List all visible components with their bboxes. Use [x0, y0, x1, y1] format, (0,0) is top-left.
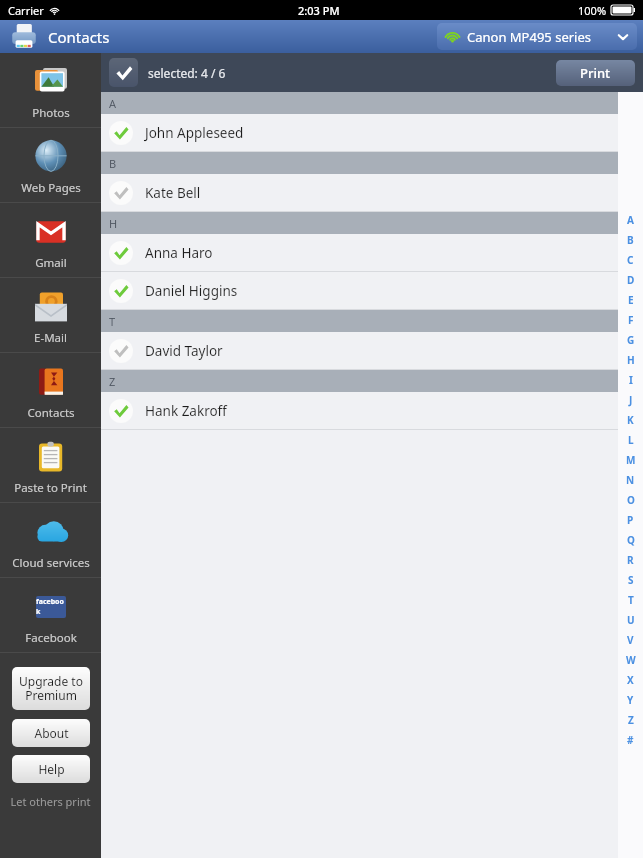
staticText: Facebook — [25, 630, 77, 646]
button[interactable]: Contacts — [0, 353, 101, 428]
staticText: Print — [580, 64, 611, 82]
button[interactable]: Web Pages — [0, 128, 101, 203]
staticText: Carrier — [8, 3, 44, 18]
staticText: E — [628, 293, 634, 307]
staticText: K — [627, 413, 634, 427]
staticText: Hank Zakroff — [145, 402, 227, 420]
staticText: Cloud services — [12, 555, 90, 571]
staticText: John Appleseed — [145, 124, 244, 142]
staticText: Photos — [32, 105, 70, 121]
staticText: Let others print — [10, 794, 91, 809]
staticText: Q — [627, 533, 635, 547]
staticText: Paste to Print — [14, 480, 87, 496]
staticText: G — [627, 333, 635, 347]
staticText: T — [628, 593, 634, 607]
staticText: C — [627, 253, 634, 267]
staticText: Gmail — [35, 255, 67, 271]
button[interactable]: facebook — [0, 578, 101, 653]
staticText: A — [627, 213, 634, 227]
staticText: U — [627, 613, 635, 627]
button[interactable]: Photos — [0, 53, 101, 128]
staticText: David Taylor — [145, 342, 223, 360]
button[interactable]: Gmail — [0, 203, 101, 278]
staticText: B — [627, 233, 634, 247]
button[interactable]: John Appleseed — [101, 114, 643, 152]
staticText: H — [109, 216, 118, 231]
staticText: F — [628, 313, 634, 327]
staticText: Contacts — [48, 27, 110, 47]
staticText: W — [626, 653, 636, 667]
button[interactable]: Cloud services — [0, 503, 101, 578]
staticText: I — [629, 373, 633, 387]
staticText: Daniel Higgins — [145, 282, 238, 300]
staticText: facebook — [36, 597, 66, 617]
staticText: Kate Bell — [145, 184, 201, 202]
staticText: J — [629, 393, 633, 407]
button[interactable]: Print — [556, 60, 635, 86]
button[interactable]: Hank Zakroff — [101, 392, 643, 430]
staticText: V — [627, 633, 634, 647]
staticText: B — [109, 156, 117, 171]
staticText: P — [627, 513, 634, 527]
button[interactable]: E-Mail — [0, 278, 101, 353]
staticText: L — [628, 433, 634, 447]
staticText: Canon MP495 series — [467, 28, 592, 46]
staticText: Web Pages — [21, 180, 81, 196]
staticText: Anna Haro — [145, 244, 213, 262]
staticText: Upgrade to Premium — [19, 673, 83, 704]
button[interactable]: David Taylor — [101, 332, 643, 370]
button[interactable]: Paste to Print — [0, 428, 101, 503]
staticText: Help — [38, 761, 65, 777]
staticText: Z — [109, 374, 116, 389]
button[interactable]: Select all — [109, 58, 138, 87]
staticText: 100% — [578, 3, 607, 18]
button[interactable]: Anna Haro — [101, 234, 643, 272]
staticText: A — [109, 96, 117, 111]
button[interactable]: Upgrade to Premium — [12, 667, 90, 710]
staticText: selected: 4 / 6 — [148, 65, 226, 81]
staticText: R — [627, 553, 634, 567]
staticText: O — [627, 493, 635, 507]
staticText: # — [627, 733, 634, 747]
staticText: About — [34, 725, 69, 741]
staticText: M — [626, 453, 636, 467]
button[interactable]: Alphabet index — [618, 92, 643, 858]
button[interactable]: Daniel Higgins — [101, 272, 643, 310]
staticText: E-Mail — [34, 330, 67, 346]
staticText: X — [627, 673, 634, 687]
staticText: 2:03 PM — [298, 3, 340, 18]
button[interactable]: About — [12, 719, 90, 747]
staticText: N — [626, 473, 635, 487]
staticText: S — [628, 573, 634, 587]
staticText: Contacts — [27, 405, 75, 421]
staticText: Y — [627, 693, 634, 707]
staticText: T — [109, 314, 116, 329]
staticText: D — [627, 273, 635, 287]
button[interactable]: Canon MP495 series — [437, 23, 637, 50]
button[interactable]: Help — [12, 755, 90, 783]
button[interactable]: Kate Bell — [101, 174, 643, 212]
staticText: Z — [628, 713, 634, 727]
staticText: H — [627, 353, 635, 367]
